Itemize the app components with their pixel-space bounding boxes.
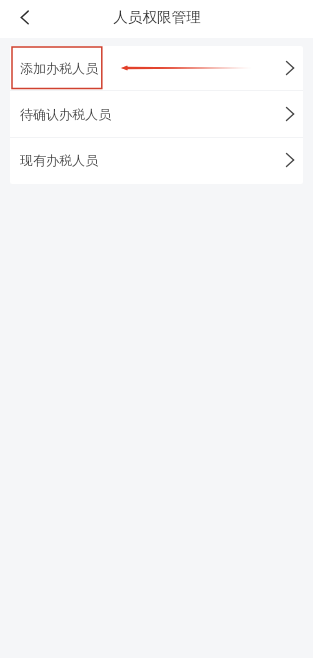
staticText: 人员权限管理: [113, 8, 201, 26]
staticText: 待确认办税人员: [20, 106, 111, 122]
staticText: 添加办税人员: [20, 60, 98, 76]
button[interactable]: 返回: [0, 0, 44, 33]
button[interactable]: 待确认办税人员: [10, 91, 303, 137]
button[interactable]: 现有办税人员: [10, 138, 303, 182]
staticText: 现有办税人员: [20, 152, 98, 168]
button[interactable]: 添加办税人员: [10, 46, 303, 90]
